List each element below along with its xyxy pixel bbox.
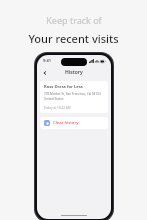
staticText: Keep track of xyxy=(46,14,102,26)
button[interactable]: Back xyxy=(40,68,49,77)
button[interactable]: Clear history xyxy=(40,117,108,129)
staticText: Clear history xyxy=(53,120,79,126)
staticText: Ross Dress for Less xyxy=(44,84,83,90)
staticText: History xyxy=(65,69,83,76)
staticText: Your recent visits xyxy=(28,31,119,46)
staticText: Today at 10:42 AM xyxy=(44,106,71,110)
staticText: United States xyxy=(44,97,64,101)
button[interactable]: Ross Dress for Less xyxy=(40,81,108,113)
staticText: 9:41 xyxy=(43,58,51,63)
staticText: 705 Market St, San Francisco, CA 94103 xyxy=(44,92,101,96)
